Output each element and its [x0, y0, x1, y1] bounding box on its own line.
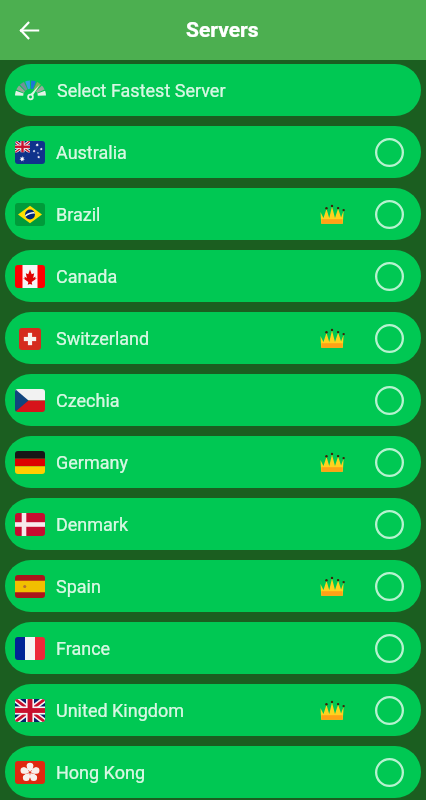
- button[interactable]: Select Fastest Server: [5, 64, 421, 116]
- button[interactable]: France: [5, 622, 421, 674]
- button[interactable]: Canada: [5, 250, 421, 302]
- staticText: Germany: [56, 452, 128, 473]
- staticText: Hong Kong: [56, 762, 145, 783]
- staticText: Czechia: [56, 390, 120, 411]
- staticText: Switzerland: [56, 328, 150, 349]
- staticText: Australia: [56, 142, 127, 163]
- button[interactable]: Back: [7, 8, 51, 52]
- staticText: Brazil: [56, 204, 101, 225]
- button[interactable]: Czechia: [5, 374, 421, 426]
- button[interactable]: Spain: [5, 560, 421, 612]
- button[interactable]: Germany: [5, 436, 421, 488]
- staticText: Servers: [186, 18, 259, 43]
- button[interactable]: Denmark: [5, 498, 421, 550]
- button[interactable]: Australia: [5, 126, 421, 178]
- button[interactable]: Switzerland: [5, 312, 421, 364]
- button[interactable]: Hong Kong: [5, 746, 421, 798]
- staticText: Canada: [56, 266, 118, 287]
- staticText: Denmark: [56, 514, 129, 535]
- staticText: Spain: [56, 576, 101, 597]
- button[interactable]: United Kingdom: [5, 684, 421, 736]
- staticText: Select Fastest Server: [57, 80, 226, 101]
- staticText: United Kingdom: [56, 700, 184, 721]
- button[interactable]: Brazil: [5, 188, 421, 240]
- staticText: France: [56, 638, 111, 659]
